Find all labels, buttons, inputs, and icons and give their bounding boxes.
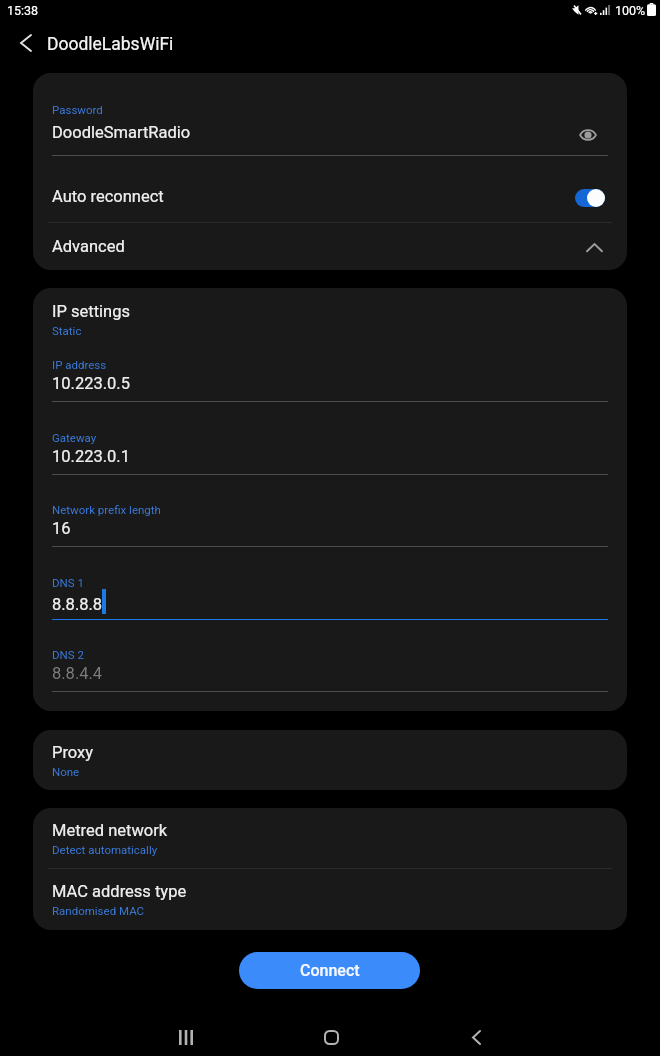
button[interactable]: Advanced — [33, 223, 627, 270]
button[interactable]: IP address — [52, 356, 608, 402]
button[interactable]: Password — [52, 100, 608, 156]
staticText: 15:38 — [7, 3, 39, 18]
staticText: DNS 1 — [52, 576, 84, 589]
button[interactable]: Show password — [570, 117, 606, 153]
button[interactable]: Metred network — [33, 808, 627, 868]
staticText: Connect — [300, 961, 360, 980]
staticText: Auto reconnect — [52, 187, 164, 206]
staticText: 100% — [615, 3, 646, 18]
button[interactable]: Back — [456, 1017, 496, 1056]
staticText: DoodleLabsWiFi — [47, 34, 174, 55]
staticText: Password — [52, 103, 103, 116]
staticText: Metred network — [52, 821, 168, 840]
button[interactable]: Network prefix length — [52, 501, 608, 547]
button[interactable]: Recents — [166, 1017, 206, 1056]
staticText: 10.223.0.1 — [52, 447, 130, 466]
staticText: DNS 2 — [52, 648, 84, 661]
staticText: Randomised MAC — [52, 904, 145, 917]
button[interactable]: Auto reconnect — [33, 163, 627, 229]
staticText: Detect automatically — [52, 843, 158, 856]
staticText: Gateway — [52, 431, 97, 444]
staticText: Advanced — [52, 237, 125, 256]
button[interactable]: MAC address type — [33, 869, 627, 930]
staticText: IP settings — [52, 302, 130, 321]
staticText: None — [52, 765, 80, 778]
staticText: 8.8.8.8 — [52, 595, 103, 614]
staticText: 8.8.4.4 — [52, 664, 103, 683]
staticText: Proxy — [52, 743, 94, 762]
button[interactable]: Home — [311, 1017, 351, 1056]
staticText: 10.223.0.5 — [52, 374, 130, 393]
button[interactable]: Back — [9, 26, 43, 60]
button[interactable]: IP settings — [52, 297, 608, 344]
button[interactable]: Auto reconnect — [568, 180, 612, 216]
button[interactable]: DNS 1 — [52, 574, 608, 620]
staticText: DoodleSmartRadio — [52, 123, 191, 142]
button[interactable]: Gateway — [52, 429, 608, 475]
button[interactable]: DNS 2 — [52, 646, 608, 692]
staticText: 16 — [52, 519, 71, 538]
staticText: IP address — [52, 358, 107, 371]
button[interactable]: Collapse advanced — [577, 230, 611, 264]
staticText: MAC address type — [52, 882, 187, 901]
button[interactable]: Connect — [239, 952, 420, 989]
staticText: Network prefix length — [52, 503, 161, 516]
staticText: Static — [52, 324, 82, 337]
button[interactable]: Proxy — [33, 730, 627, 790]
